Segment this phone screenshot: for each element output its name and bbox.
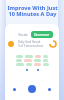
staticText: Improve With Just 10 Minutes A Day [7,4,58,18]
button[interactable]: Home [13,88,16,91]
staticText: Vocab [18,32,28,37]
button[interactable]: Start lesson [28,85,36,93]
staticText: Grammar [34,32,50,37]
staticText: Daily Goal Streak [18,40,41,44]
staticText: 3 of 5 lessons done [18,44,44,48]
button[interactable]: Profile [48,88,51,91]
button[interactable]: Grammar [34,32,50,37]
